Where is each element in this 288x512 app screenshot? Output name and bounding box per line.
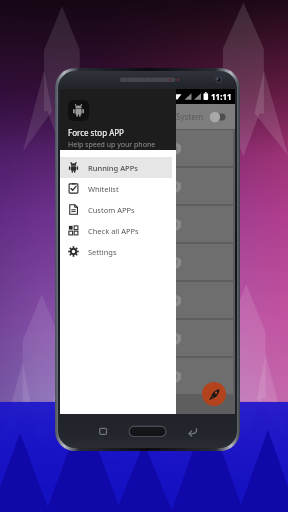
staticText: Custom APPs: [88, 205, 135, 215]
staticText: Check all APPs: [88, 226, 139, 236]
staticText: Running APPs: [88, 163, 138, 173]
button[interactable]: [62, 130, 233, 166]
staticText: Settings: [88, 247, 117, 257]
staticText: 11:11: [211, 91, 232, 102]
button[interactable]: [62, 244, 233, 280]
staticText: System: [176, 111, 204, 122]
button[interactable]: Check all APPs: [60, 220, 172, 241]
button[interactable]: [62, 282, 233, 318]
button[interactable]: System: [60, 104, 235, 129]
button[interactable]: Settings: [60, 241, 172, 262]
button[interactable]: [62, 358, 233, 394]
staticText: Help speed up your phone: [68, 140, 156, 150]
button[interactable]: Boost: [202, 382, 226, 406]
staticText: Force stop APP: [68, 127, 124, 138]
button[interactable]: [62, 320, 233, 356]
button[interactable]: [62, 206, 233, 242]
button[interactable]: [62, 168, 233, 204]
button[interactable]: Running APPs: [60, 157, 172, 178]
button[interactable]: Whitelist: [60, 178, 172, 199]
button[interactable]: Custom APPs: [60, 199, 172, 220]
staticText: Whitelist: [88, 184, 119, 194]
